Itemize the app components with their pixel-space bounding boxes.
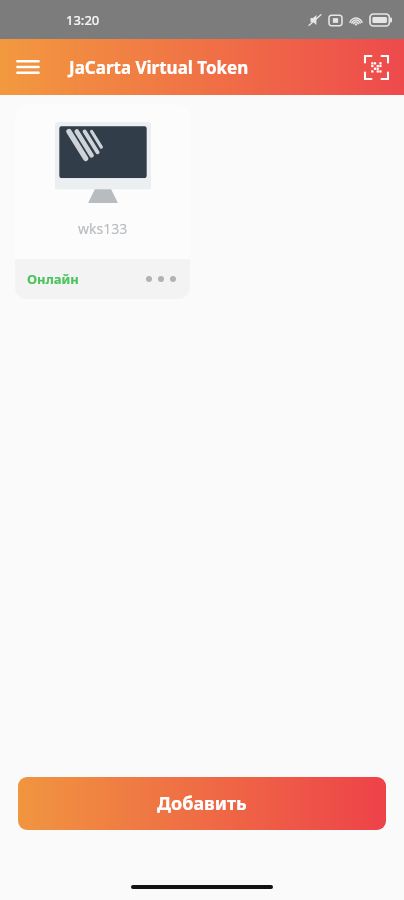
staticText: Добавить bbox=[157, 791, 247, 816]
staticText: Онлайн bbox=[27, 270, 79, 288]
staticText: JaCarta Virtual Token bbox=[69, 56, 249, 79]
button[interactable]: Menu bbox=[6, 45, 50, 89]
staticText: 13:20 bbox=[66, 11, 100, 29]
button[interactable]: More options bbox=[144, 270, 178, 288]
button[interactable]: wks133 bbox=[15, 104, 190, 299]
button[interactable]: Scan QR code bbox=[354, 45, 398, 89]
staticText: wks133 bbox=[78, 219, 128, 238]
button[interactable]: Добавить bbox=[18, 777, 386, 830]
